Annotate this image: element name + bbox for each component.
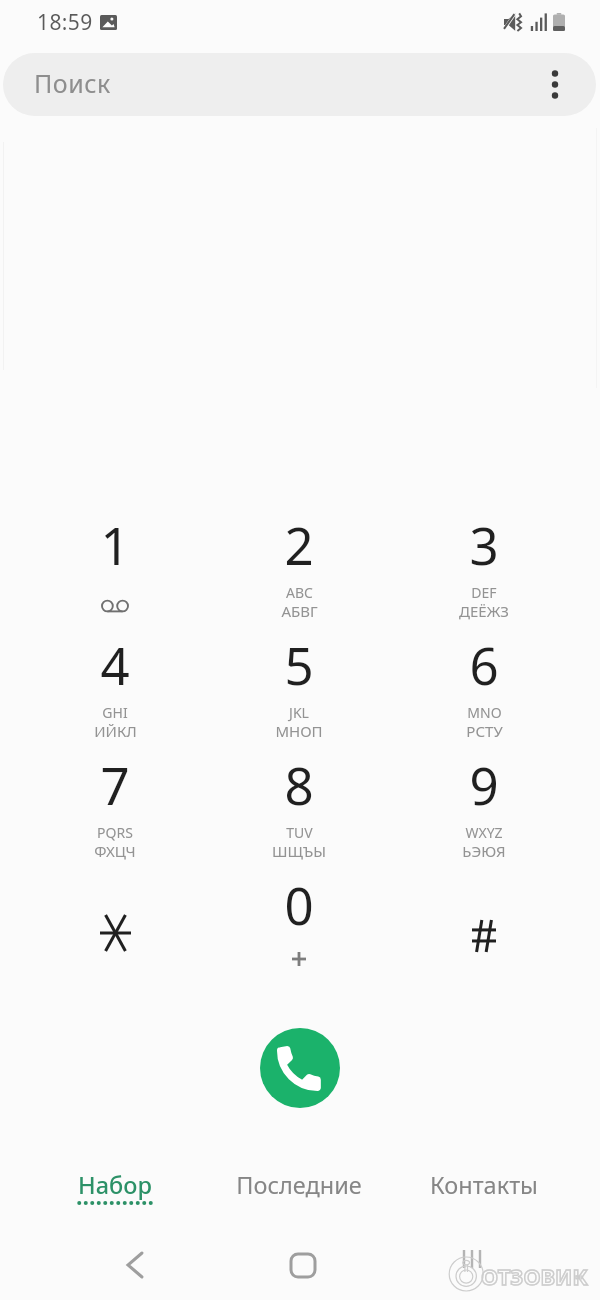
- staticText: РСТУ: [466, 721, 503, 741]
- button[interactable]: 7: [25, 745, 205, 865]
- staticText: 18:59: [37, 8, 93, 37]
- button[interactable]: 3: [394, 505, 574, 625]
- staticText: 1: [100, 510, 130, 579]
- button[interactable]: Поиск: [3, 53, 596, 116]
- staticText: ИЙКЛ: [94, 721, 137, 741]
- staticText: GHI: [102, 703, 128, 722]
- staticText: Контакты: [430, 1169, 538, 1201]
- button[interactable]: Контакты: [389, 1155, 579, 1217]
- staticText: ШЩЪЫ: [272, 841, 326, 861]
- staticText: JKL: [289, 703, 309, 722]
- staticText: 9: [469, 750, 499, 819]
- staticText: ABC: [286, 583, 313, 602]
- staticText: TUV: [286, 823, 313, 842]
- staticText: MNO: [467, 703, 502, 722]
- button[interactable]: [25, 865, 205, 985]
- button[interactable]: 4: [25, 625, 205, 745]
- button[interactable]: Back: [65, 1230, 205, 1300]
- staticText: PQRS: [97, 823, 133, 842]
- button[interactable]: 1: [25, 505, 205, 625]
- button[interactable]: 9: [394, 745, 574, 865]
- staticText: Последние: [236, 1169, 362, 1201]
- staticText: ФХЦЧ: [94, 841, 136, 861]
- button[interactable]: Последние: [204, 1155, 394, 1217]
- staticText: 3: [469, 510, 499, 579]
- staticText: Набор: [78, 1169, 152, 1201]
- staticText: Поиск: [34, 66, 111, 100]
- button[interactable]: Call: [260, 1028, 340, 1108]
- button[interactable]: Recents: [400, 1230, 540, 1300]
- button[interactable]: 0: [209, 865, 389, 985]
- staticText: 5: [284, 630, 314, 699]
- staticText: DEF: [471, 583, 497, 602]
- staticText: 8: [284, 750, 314, 819]
- button[interactable]: 5: [209, 625, 389, 745]
- staticText: 4: [100, 630, 130, 699]
- staticText: WXYZ: [465, 823, 503, 842]
- button[interactable]: Набор: [20, 1155, 210, 1217]
- staticText: МНОП: [275, 721, 323, 741]
- button[interactable]: Home: [233, 1230, 373, 1300]
- button[interactable]: More options: [538, 53, 572, 116]
- staticText: ЬЭЮЯ: [462, 841, 506, 861]
- button[interactable]: 2: [209, 505, 389, 625]
- staticText: АБВГ: [281, 601, 318, 621]
- button[interactable]: 6: [394, 625, 574, 745]
- staticText: 6: [469, 630, 499, 699]
- button[interactable]: [394, 865, 574, 985]
- staticText: ДЕЁЖЗ: [459, 601, 509, 621]
- staticText: ОТЗОВИК: [481, 1261, 588, 1291]
- staticText: 0: [284, 870, 314, 939]
- staticText: 7: [100, 750, 130, 819]
- staticText: 2: [284, 510, 314, 579]
- button[interactable]: 8: [209, 745, 389, 865]
